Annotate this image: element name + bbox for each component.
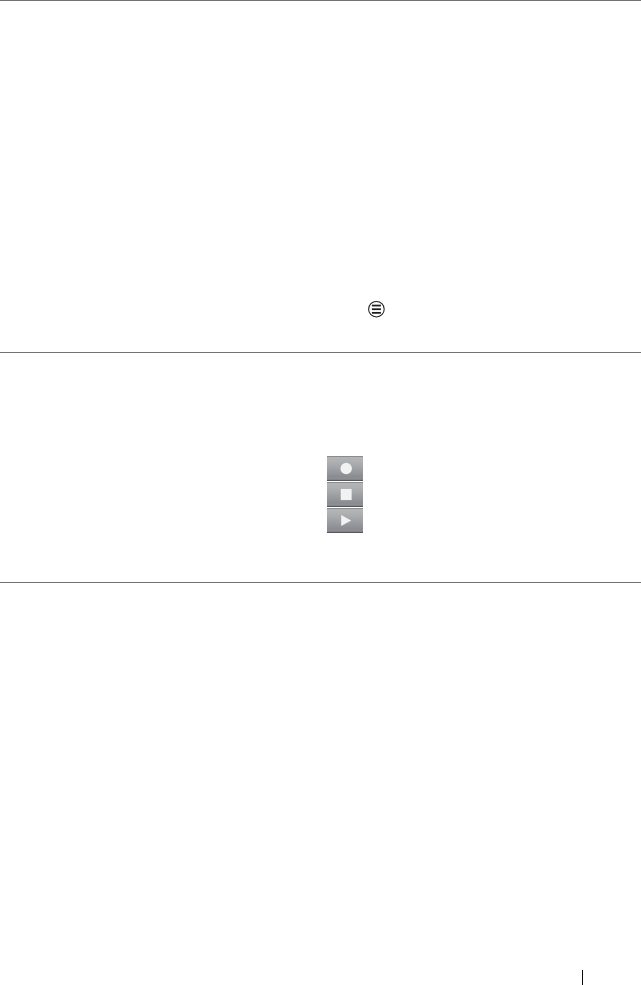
button[interactable]: Play <box>327 508 363 533</box>
button[interactable]: Record <box>327 456 363 481</box>
button[interactable]: Menu <box>368 301 385 318</box>
button[interactable]: Stop <box>327 482 363 507</box>
